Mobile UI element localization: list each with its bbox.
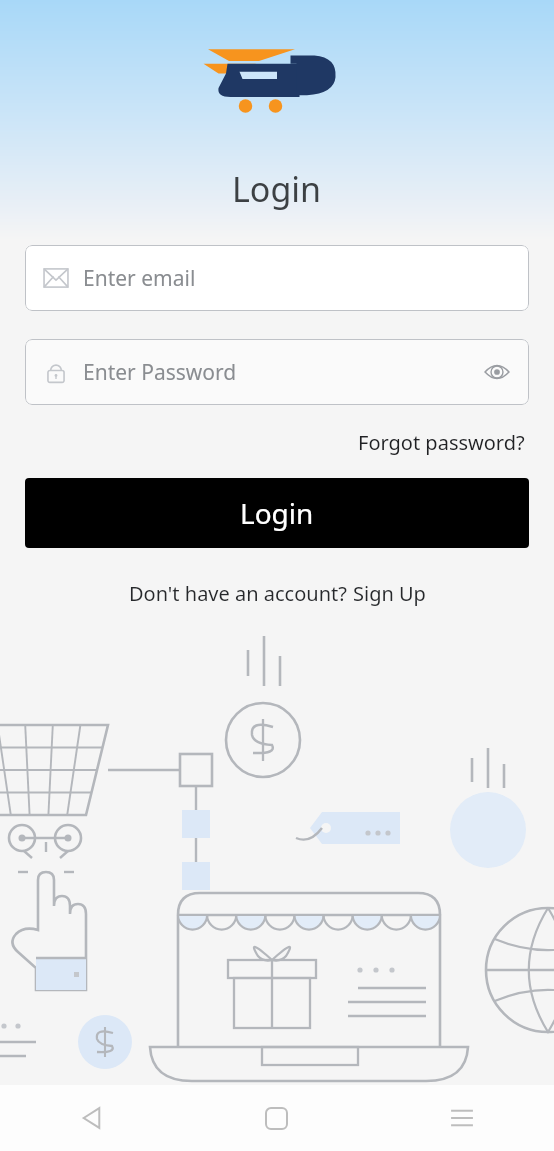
button[interactable]: Show password	[479, 354, 515, 390]
staticText: Forgot password?	[358, 429, 525, 456]
staticText: Login	[240, 494, 314, 532]
button[interactable]: Don't have an account?	[125, 576, 430, 611]
button[interactable]: Forgot password?	[354, 425, 529, 460]
button[interactable]: Home	[184, 1085, 369, 1151]
staticText: Sign Up	[353, 580, 426, 607]
staticText: Enter Password	[83, 358, 479, 387]
button[interactable]: Login	[25, 478, 529, 548]
button[interactable]: Back	[0, 1085, 184, 1151]
staticText: Login	[232, 166, 322, 212]
staticText: Enter email	[83, 264, 196, 293]
staticText: Don't have an account?	[129, 580, 353, 607]
button[interactable]: Enter email	[25, 245, 529, 311]
button[interactable]: Recent apps	[369, 1085, 554, 1151]
button[interactable]: Enter Password	[25, 339, 529, 405]
